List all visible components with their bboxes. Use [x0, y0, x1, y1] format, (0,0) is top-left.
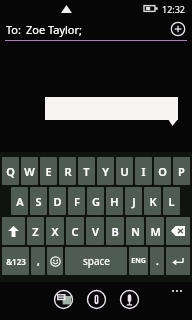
staticText: M	[150, 224, 161, 239]
button[interactable]: A	[11, 187, 28, 215]
staticText: G	[92, 194, 100, 209]
button[interactable]: O	[154, 157, 171, 185]
button[interactable]: K	[144, 187, 161, 215]
button[interactable]: L	[163, 187, 180, 215]
staticText: E	[45, 164, 52, 179]
staticText: Zoe Taylor;	[26, 22, 83, 37]
button[interactable]: D	[49, 187, 66, 215]
button[interactable]: Y	[97, 157, 114, 185]
staticText: J	[132, 194, 136, 209]
staticText: Z	[32, 224, 39, 239]
staticText: I	[141, 164, 146, 179]
staticText: F	[74, 194, 80, 209]
staticText: &123	[6, 256, 26, 267]
button[interactable]: F	[68, 187, 85, 215]
staticText: space	[83, 254, 110, 268]
button[interactable]: W	[21, 157, 38, 185]
button[interactable]: Backspace	[166, 217, 190, 245]
button[interactable]: X	[46, 217, 64, 245]
staticText: H	[110, 194, 119, 209]
staticText: 12:32	[162, 3, 186, 15]
staticText: To:	[6, 22, 21, 37]
staticText: P	[178, 164, 185, 179]
button[interactable]: H	[106, 187, 123, 215]
button[interactable]: Q	[2, 157, 19, 185]
button[interactable]: T	[78, 157, 95, 185]
button[interactable]: Add recipient	[170, 21, 186, 37]
staticText: R	[64, 164, 72, 179]
staticText: ,	[37, 254, 40, 268]
button[interactable]: Voice input	[119, 289, 140, 310]
staticText: V	[92, 224, 99, 239]
staticText: B	[111, 224, 119, 239]
staticText: Y	[102, 164, 109, 179]
staticText: A	[16, 194, 24, 209]
button[interactable]: &123	[2, 247, 29, 275]
button[interactable]: I	[135, 157, 152, 185]
button[interactable]: .	[150, 247, 164, 275]
button[interactable]: C	[66, 217, 84, 245]
button[interactable]: B	[106, 217, 124, 245]
button[interactable]: V	[86, 217, 104, 245]
staticText: N	[131, 224, 140, 239]
button[interactable]: More options	[167, 286, 187, 296]
button[interactable]: G	[87, 187, 104, 215]
staticText: ENG	[131, 256, 146, 266]
button[interactable]: J	[125, 187, 142, 215]
button[interactable]: R	[59, 157, 76, 185]
button[interactable]: To:	[0, 17, 192, 41]
staticText: C	[71, 224, 79, 239]
staticText: L	[168, 194, 175, 209]
staticText: Q	[6, 164, 15, 179]
button[interactable]: Emoji	[47, 247, 63, 275]
button[interactable]: Attach	[86, 289, 107, 310]
button[interactable]: space	[65, 247, 127, 275]
staticText: .	[156, 254, 159, 268]
button[interactable]: S	[30, 187, 47, 215]
button[interactable]: P	[173, 157, 190, 185]
button[interactable]: Shift	[2, 217, 25, 245]
staticText: K	[149, 194, 157, 209]
staticText: S	[35, 194, 42, 209]
button[interactable]: Insert message	[53, 289, 74, 310]
staticText: D	[53, 194, 62, 209]
staticText: U	[120, 164, 129, 179]
button[interactable]: M	[146, 217, 164, 245]
button[interactable]: ,	[31, 247, 45, 275]
staticText: T	[83, 164, 90, 179]
staticText: W	[24, 164, 35, 179]
button[interactable]: N	[126, 217, 144, 245]
staticText: O	[158, 164, 167, 179]
button[interactable]: E	[40, 157, 57, 185]
button[interactable]: U	[116, 157, 133, 185]
button[interactable]: Z	[27, 217, 44, 245]
button[interactable]: ENG	[129, 247, 148, 275]
staticText: X	[51, 224, 59, 239]
button[interactable]: Enter	[166, 247, 190, 275]
